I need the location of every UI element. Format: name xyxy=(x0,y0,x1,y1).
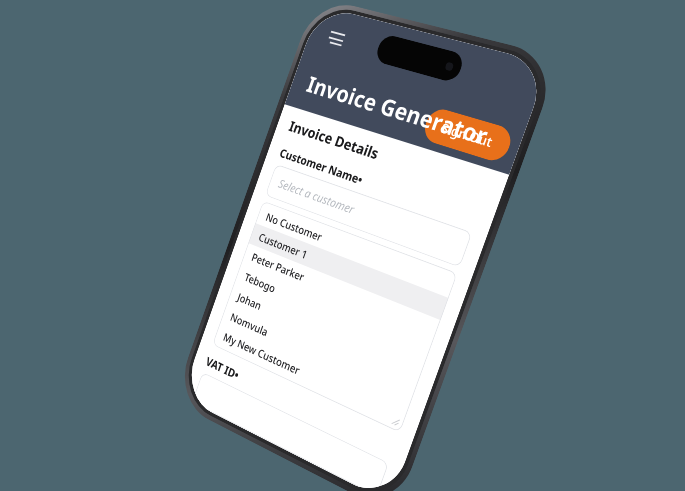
staticText: My New Customer xyxy=(222,329,302,378)
staticText: No Customer xyxy=(264,209,324,244)
button[interactable]: Peter Parker xyxy=(241,243,441,342)
staticText: Sign Out xyxy=(439,118,496,151)
staticText: Nomvula xyxy=(229,309,270,339)
staticText: Customer 1 xyxy=(257,229,310,262)
staticText: Select a customer xyxy=(276,175,357,217)
button[interactable]: Open navigation menu xyxy=(320,23,351,54)
button[interactable]: My New Customer xyxy=(213,322,409,430)
button[interactable]: Customer 1 xyxy=(248,223,449,320)
staticText: Peter Parker xyxy=(250,249,306,284)
button[interactable]: Select a customer xyxy=(265,164,472,268)
button[interactable]: Nomvula xyxy=(220,303,417,408)
button[interactable]: No Customer xyxy=(255,203,457,298)
button[interactable] xyxy=(192,372,389,491)
button[interactable]: Johan xyxy=(227,283,425,386)
staticText: VAT ID• xyxy=(204,353,241,383)
button[interactable]: Sign Out xyxy=(420,106,515,164)
staticText: Tebogo xyxy=(243,269,278,295)
staticText: Invoice Details xyxy=(286,116,381,164)
staticText: Invoice Generator xyxy=(303,68,493,152)
button[interactable]: Tebogo xyxy=(234,263,433,364)
staticText: Customer Name• xyxy=(278,145,365,188)
staticText: Johan xyxy=(236,289,264,313)
